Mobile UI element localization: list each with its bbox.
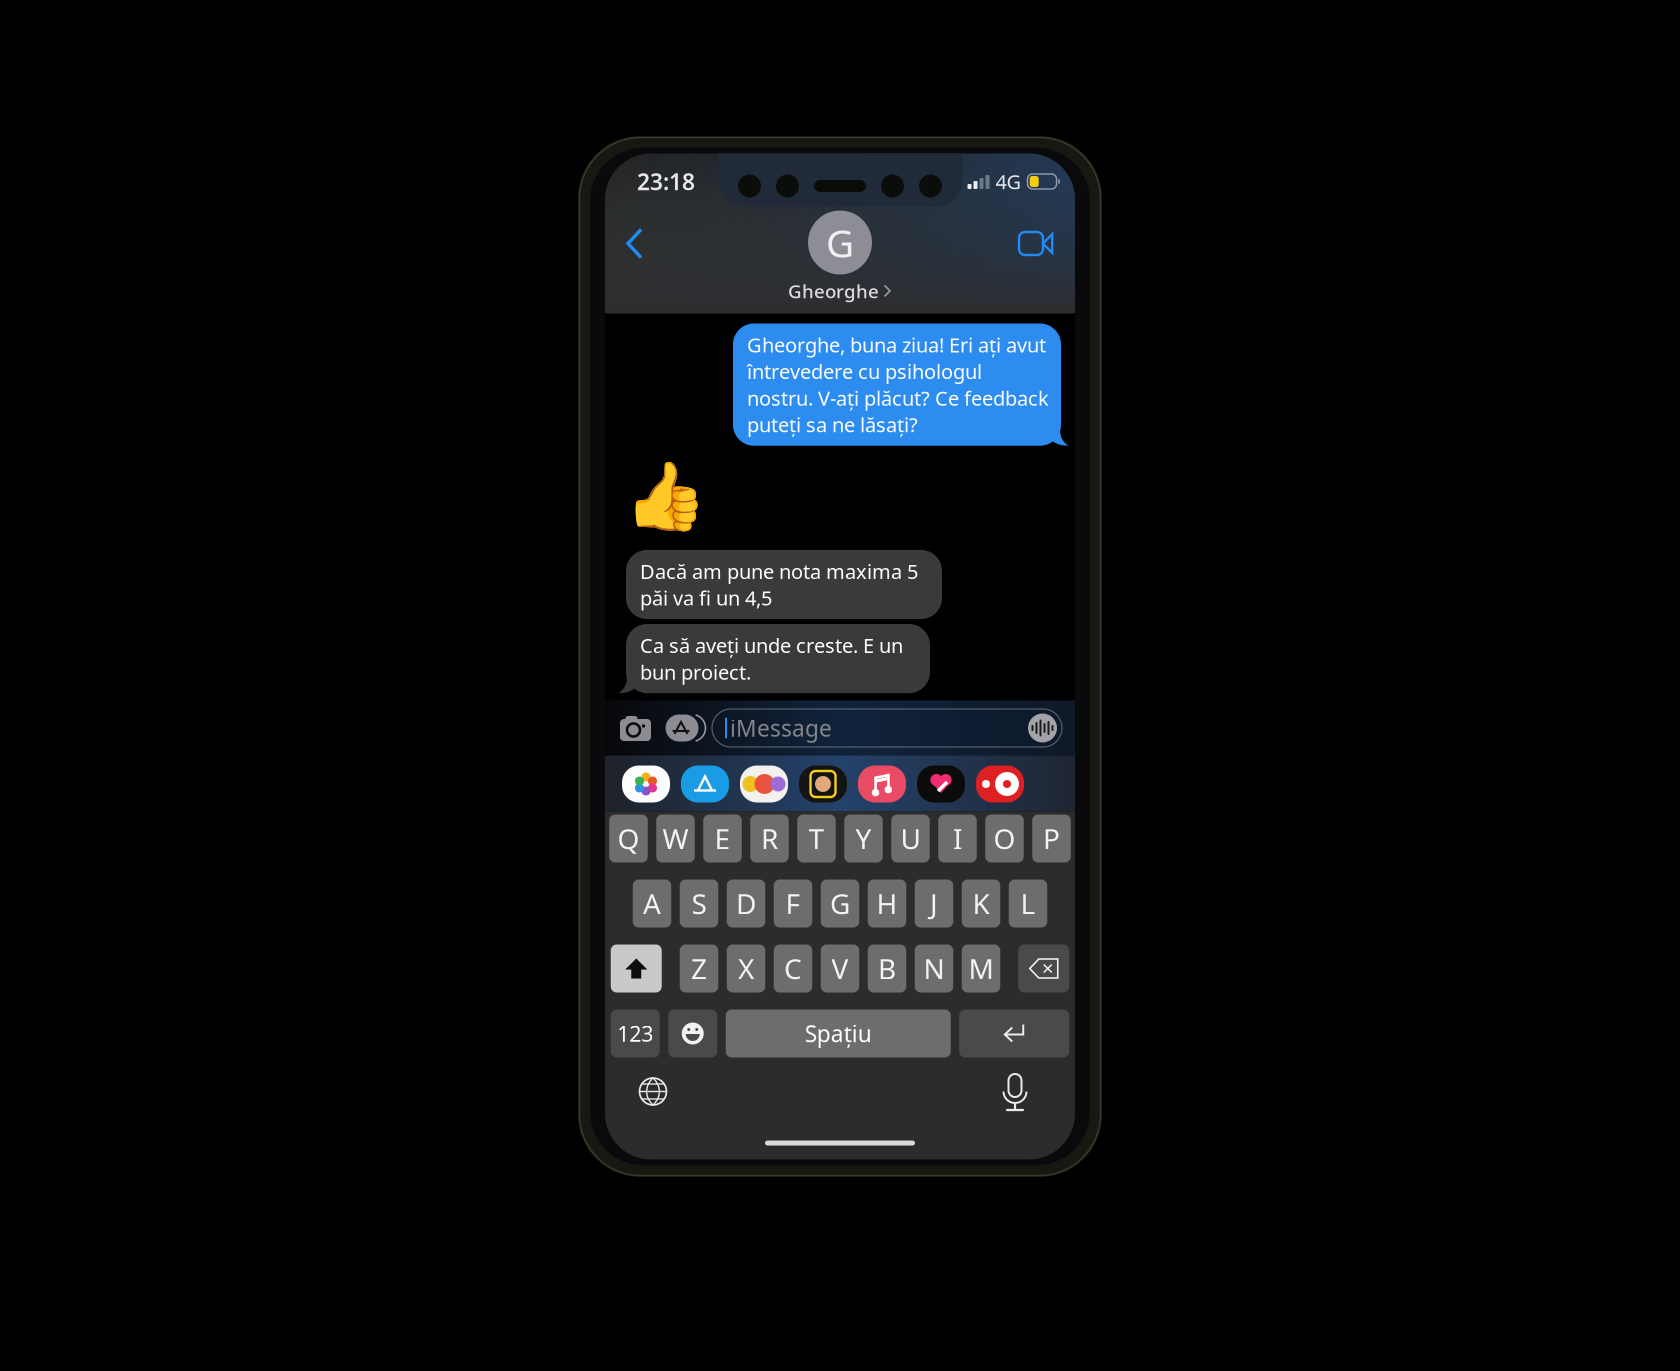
button[interactable]: H [868,879,906,927]
button[interactable]: U [891,814,930,862]
staticText: Y [855,820,871,857]
staticText: L [1020,885,1035,922]
button[interactable]: G [821,879,859,927]
staticText: W [662,820,688,857]
staticText: C [784,950,802,987]
button[interactable]: Memoji stickers [740,765,788,802]
button[interactable]: Back [624,220,664,266]
button[interactable]: B [868,944,906,992]
button[interactable]: C [774,944,812,992]
staticText: 4G [995,168,1021,195]
button[interactable]: P [1032,814,1071,862]
button[interactable]: App Store [681,765,729,802]
button[interactable]: Record audio message [1028,713,1057,742]
staticText: iMessage [730,713,832,743]
button[interactable]: Fitness [917,765,965,802]
button[interactable]: S [680,879,718,927]
staticText: D [736,885,756,922]
staticText: B [878,950,896,987]
button[interactable]: Memoji [799,765,847,802]
button[interactable]: 123 [611,1009,660,1057]
button[interactable]: F [774,879,812,927]
staticText: I [953,820,962,857]
button[interactable]: D [727,879,765,927]
button[interactable]: R [750,814,789,862]
button[interactable]: K [962,879,1000,927]
button[interactable]: Dictation [1002,1071,1028,1111]
button[interactable]: L [1009,879,1047,927]
staticText: Gheorghe, buna ziua! Eri ați avut întrev… [747,331,1049,438]
staticText: K [972,885,989,922]
staticText: U [900,820,920,857]
staticText: G [830,885,850,922]
staticText: Ca să aveți unde creste. E un bun proiec… [640,632,903,685]
button[interactable]: T [797,814,836,862]
staticText: Q [617,820,639,857]
button[interactable]: Switch keyboard [638,1076,668,1106]
staticText: Gheorghe [788,278,879,303]
staticText: Dacă am pune nota maxima 5 păi va fi un … [640,558,918,611]
staticText: M [968,950,993,987]
button[interactable]: Emoji keyboard [668,1009,717,1057]
staticText: P [1043,820,1060,857]
button[interactable]: Music [858,765,906,802]
button[interactable]: FaceTime video [1007,220,1053,266]
staticText: S [691,885,706,922]
staticText: X [738,950,754,987]
staticText: G [826,217,854,268]
button[interactable]: iMessage apps [664,714,700,742]
button[interactable]: O [985,814,1024,862]
staticText: O [993,820,1015,857]
button[interactable]: More apps [976,765,1024,802]
button[interactable]: Spațiu [726,1009,951,1057]
button[interactable]: J [915,879,953,927]
button[interactable]: I [938,814,977,862]
staticText: 👍 [624,458,707,534]
staticText: V [831,950,848,987]
staticText: 23:18 [637,166,695,196]
staticText: J [930,885,938,922]
button[interactable]: W [656,814,695,862]
button[interactable]: Y [844,814,883,862]
button[interactable]: N [915,944,953,992]
button[interactable]: Shift [611,944,662,992]
staticText: R [761,820,778,857]
button[interactable]: X [727,944,765,992]
staticText: 123 [617,1019,653,1048]
staticText: Z [691,950,707,987]
button[interactable]: V [821,944,859,992]
button[interactable]: Take photo [619,713,652,743]
staticText: T [808,820,824,857]
button[interactable]: G [760,209,920,313]
button[interactable]: M [962,944,1000,992]
button[interactable]: E [703,814,742,862]
staticText: Spațiu [805,1018,872,1048]
button[interactable]: Q [609,814,648,862]
button[interactable]: Delete [1018,944,1069,992]
staticText: H [876,885,897,922]
staticText: E [714,820,730,857]
staticText: F [785,885,800,922]
button[interactable]: Z [680,944,718,992]
button[interactable]: A [633,879,671,927]
staticText: N [923,950,944,987]
staticText: A [643,885,661,922]
button[interactable]: Photos [622,765,670,802]
button[interactable]: Return [959,1009,1069,1057]
